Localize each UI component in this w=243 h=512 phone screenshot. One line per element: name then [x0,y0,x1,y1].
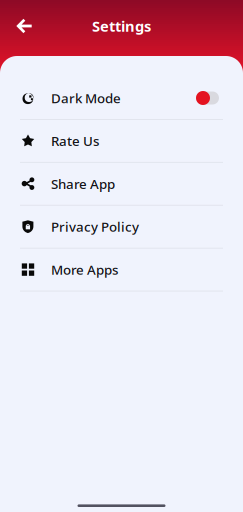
button[interactable]: Rate Us [0,120,243,162]
staticText: More Apps [51,261,118,278]
button[interactable]: Dark Mode [0,77,243,119]
staticText: Privacy Policy [51,218,139,235]
staticText: Rate Us [51,132,99,150]
staticText: Dark Mode [51,89,121,107]
button[interactable]: More Apps [0,249,243,291]
staticText: Share App [51,175,115,193]
button[interactable]: Privacy Policy [0,206,243,248]
staticText: Settings [92,16,151,36]
button[interactable]: Share App [0,163,243,205]
button[interactable]: Back [6,8,42,44]
